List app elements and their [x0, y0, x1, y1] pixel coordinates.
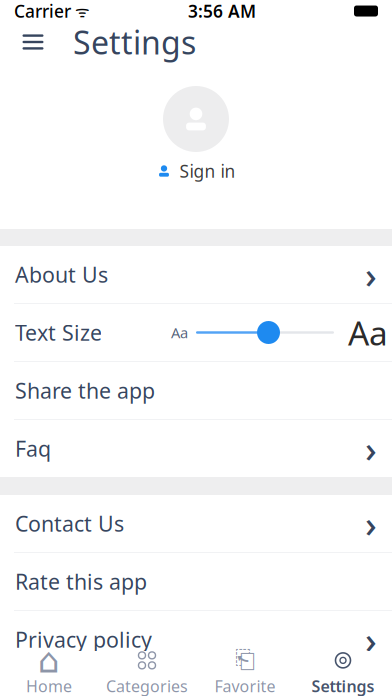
staticText: › — [365, 659, 377, 696]
button[interactable]: Sign in — [156, 158, 235, 184]
staticText: ᯤ — [71, 0, 90, 22]
button[interactable]: ⌂ — [0, 651, 98, 696]
staticText: Rate this app — [15, 567, 147, 596]
staticText: ⌂ — [38, 641, 60, 680]
staticText: › — [365, 500, 377, 547]
staticText: Contact Us — [15, 509, 124, 538]
staticText: › — [365, 616, 377, 663]
button[interactable]: Contact Us — [0, 495, 392, 552]
staticText: Faq — [15, 434, 51, 463]
staticText: Terms and Conditions — [15, 668, 234, 696]
staticText: Categories — [106, 675, 188, 696]
staticText: 3:56 AM — [188, 0, 256, 22]
staticText: Sign in — [179, 159, 235, 182]
staticText: ⎗ — [235, 648, 255, 673]
button[interactable]: Menu — [11, 25, 55, 59]
staticText: Text Size — [15, 318, 102, 347]
button[interactable]: Rate this app — [0, 553, 392, 610]
button[interactable]: ⎗ — [196, 651, 294, 696]
staticText: Home — [26, 675, 72, 696]
button[interactable]: Share the app — [0, 362, 392, 419]
button[interactable]: Settings — [294, 651, 392, 696]
staticText: Carrier — [14, 0, 71, 22]
button[interactable]: Categories — [98, 651, 196, 696]
staticText: Share the app — [15, 376, 155, 405]
staticText: › — [365, 251, 377, 298]
button[interactable]: Terms and Conditions — [0, 654, 392, 696]
staticText: Aa — [171, 323, 188, 342]
staticText: Favorite — [214, 675, 275, 696]
button[interactable]: Privacy policy — [0, 611, 392, 668]
staticText: Settings — [73, 21, 196, 63]
staticText: Privacy policy — [15, 625, 152, 654]
staticText: Settings — [311, 675, 374, 696]
staticText: › — [365, 425, 377, 472]
staticText: Aa — [348, 310, 388, 355]
button[interactable]: Faq — [0, 420, 392, 477]
staticText: About Us — [15, 260, 108, 289]
button[interactable]: About Us — [0, 246, 392, 303]
